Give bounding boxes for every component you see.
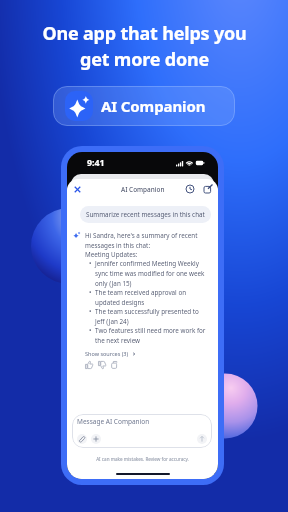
staticText: Show sources (3) [85,350,129,357]
button[interactable]: Show sources (3) [85,350,136,357]
staticText: The team successfully presented to Jeff … [95,307,209,326]
button[interactable]: Close [72,184,83,195]
button[interactable]: Add [91,434,101,444]
staticText: Meeting Updates: [85,250,138,259]
button[interactable]: New chat [203,184,213,194]
staticText: AI Companion [101,96,206,116]
staticText: Hi Sandra, here's a summary of recent me… [85,231,209,250]
staticText: AI Companion [121,185,165,194]
button[interactable]: History [185,184,195,194]
button[interactable]: Send [197,434,207,444]
staticText: • [89,307,92,316]
staticText: • [89,259,92,268]
button[interactable]: AI Companion [53,86,235,126]
staticText: The team received approval on updated de… [95,288,209,307]
staticText: Summarize recent messages in this chat [86,210,205,219]
staticText: Jennifer confirmed Meeting Weekly sync t… [95,259,209,288]
button[interactable]: Copy [111,361,119,369]
button[interactable]: Dislike [98,361,106,369]
staticText: • [89,288,92,297]
staticText: Two features still need more work for th… [95,326,209,345]
staticText: One app that helps you get more done [42,21,247,72]
staticText: AI can make mistakes. Review for accurac… [67,456,218,462]
button[interactable]: Message AI Companion [72,414,212,448]
button[interactable]: Like [85,361,93,369]
staticText: 9:41 [87,157,105,169]
staticText: • [89,326,92,335]
staticText: Message AI Companion [77,417,150,426]
button[interactable]: Attach file [77,434,87,444]
